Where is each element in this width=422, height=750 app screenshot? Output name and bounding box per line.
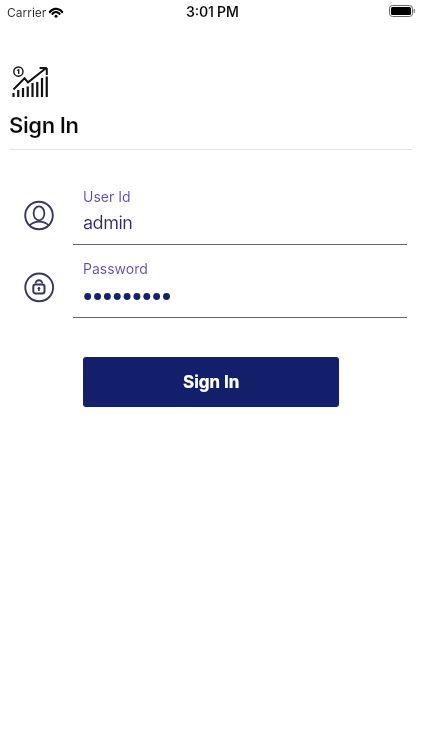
staticText: Carrier xyxy=(7,5,47,20)
staticText: 3:01 PM xyxy=(186,3,239,20)
staticText: User Id xyxy=(83,188,131,205)
staticText: admin xyxy=(83,212,133,234)
button[interactable]: User Id xyxy=(74,184,407,244)
staticText: Password xyxy=(83,260,148,277)
button[interactable]: Sign In xyxy=(83,357,339,407)
button[interactable]: Password xyxy=(74,256,407,319)
staticText: Sign In xyxy=(183,372,240,393)
staticText: Sign In xyxy=(9,112,79,139)
